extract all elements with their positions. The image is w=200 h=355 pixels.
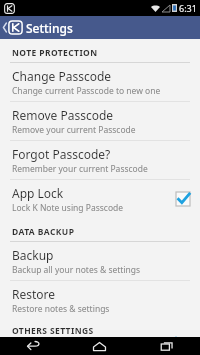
button[interactable]: Backup [0,242,200,280]
staticText: Settings [26,20,73,36]
staticText: Change current Passcode to new one [12,85,161,97]
button[interactable]: Remove Passcode [0,102,200,140]
button[interactable]: Change Passcode [0,63,200,101]
button[interactable]: Home [66,337,133,355]
staticText: Forgot Passcode? [12,146,111,162]
staticText: NOTE PROTECTION [12,47,98,59]
staticText: Remove your current Passcode [12,124,136,136]
staticText: Change Passcode [12,68,112,84]
staticText: App Lock [12,185,64,201]
staticText: Remember your current Passcode [12,163,148,175]
button[interactable]: Up, Settings [0,16,200,39]
staticText: Backup all your notes & settings [12,264,141,276]
button[interactable]: Back [0,337,66,355]
button[interactable]: Recent apps [133,337,200,355]
staticText: Lock K Note using Passcode [12,202,124,214]
button[interactable]: Toggle App Lock [176,192,190,206]
staticText: OTHERS SETTINGS [12,325,94,337]
staticText: Remove Passcode [12,107,114,123]
button[interactable]: Forgot Passcode? [0,141,200,179]
staticText: Restore notes & settings [12,303,110,315]
button[interactable]: App Lock [0,180,200,218]
staticText: 6:31 [179,2,197,14]
staticText: Backup [12,247,54,263]
staticText: Restore [12,286,56,302]
button[interactable]: Restore [0,281,200,319]
staticText: DATA BACKUP [12,226,75,238]
